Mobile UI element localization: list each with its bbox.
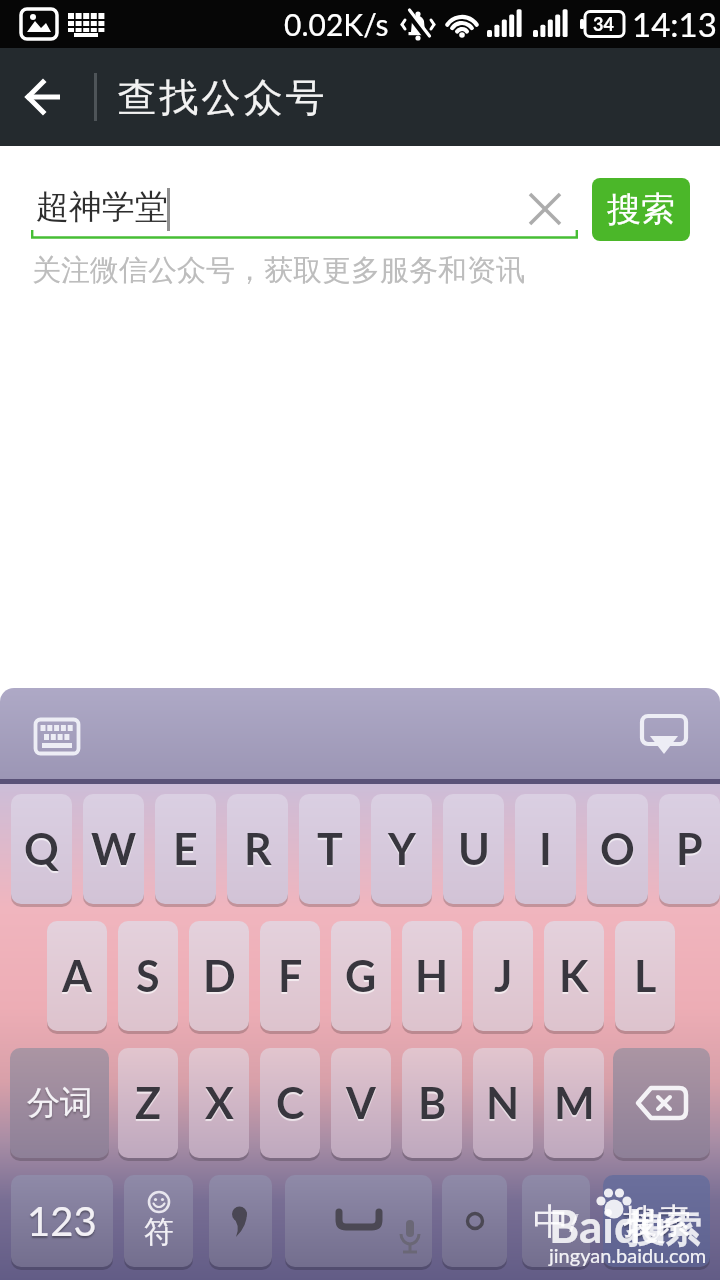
staticText: Z: [135, 1077, 162, 1129]
button[interactable]: [613, 1048, 710, 1158]
staticText: S: [136, 950, 160, 1002]
staticText: H: [415, 950, 449, 1002]
button[interactable]: [285, 1175, 432, 1267]
button[interactable]: F: [260, 921, 320, 1031]
staticText: 超神学堂: [36, 186, 168, 228]
staticText: I: [539, 823, 552, 875]
staticText: O: [600, 823, 635, 875]
button[interactable]: W: [83, 794, 144, 904]
staticText: 123: [27, 1197, 97, 1245]
button[interactable]: I: [515, 794, 576, 904]
button[interactable]: U: [443, 794, 504, 904]
button[interactable]: T: [299, 794, 360, 904]
button[interactable]: L: [615, 921, 675, 1031]
staticText: A: [62, 950, 92, 1002]
staticText: E: [173, 823, 198, 875]
staticText: 14:13: [632, 4, 717, 44]
staticText: J: [494, 950, 513, 1002]
button[interactable]: 中: [522, 1175, 590, 1267]
button[interactable]: [442, 1175, 507, 1267]
staticText: V: [346, 1077, 376, 1129]
button[interactable]: [630, 704, 698, 766]
button[interactable]: P: [659, 794, 720, 904]
button[interactable]: O: [587, 794, 648, 904]
button[interactable]: [209, 1175, 272, 1267]
staticText: 搜索: [607, 188, 675, 231]
button[interactable]: H: [402, 921, 462, 1031]
staticText: N: [486, 1077, 520, 1129]
staticText: L: [634, 950, 657, 1002]
staticText: D: [203, 950, 236, 1002]
staticText: 查找公众号: [116, 73, 326, 122]
staticText: M: [554, 1077, 595, 1129]
staticText: 搜索: [623, 1200, 691, 1243]
button[interactable]: G: [331, 921, 391, 1031]
staticText: 符: [144, 1213, 174, 1251]
button[interactable]: C: [260, 1048, 320, 1158]
button[interactable]: 符: [124, 1175, 193, 1267]
button[interactable]: Y: [371, 794, 432, 904]
staticText: 搜索: [627, 1206, 701, 1253]
staticText: 关注微信公众号，获取更多服务和资讯: [32, 252, 525, 289]
button[interactable]: D: [189, 921, 249, 1031]
staticText: /: [569, 1204, 579, 1239]
staticText: X: [205, 1077, 234, 1129]
staticText: K: [559, 950, 589, 1002]
staticText: Q: [24, 823, 59, 875]
button[interactable]: J: [473, 921, 533, 1031]
button[interactable]: 搜索: [592, 178, 690, 241]
staticText: Y: [388, 823, 416, 875]
staticText: 34: [593, 13, 614, 35]
staticText: U: [458, 823, 490, 875]
button[interactable]: [24, 708, 90, 764]
button[interactable]: M: [544, 1048, 604, 1158]
staticText: P: [676, 823, 703, 875]
staticText: W: [91, 823, 137, 875]
button[interactable]: Z: [118, 1048, 178, 1158]
button[interactable]: 123: [11, 1175, 113, 1267]
staticText: 分词: [27, 1082, 93, 1124]
staticText: T: [317, 823, 343, 875]
staticText: Baidu: [549, 1198, 667, 1253]
staticText: F: [278, 950, 303, 1002]
staticText: C: [276, 1077, 305, 1129]
button[interactable]: A: [47, 921, 107, 1031]
staticText: B: [418, 1077, 447, 1129]
button[interactable]: [519, 183, 571, 235]
button[interactable]: S: [118, 921, 178, 1031]
button[interactable]: N: [473, 1048, 533, 1158]
button[interactable]: R: [227, 794, 288, 904]
staticText: 中: [533, 1199, 569, 1244]
staticText: 0.02K/s: [284, 6, 389, 42]
button[interactable]: B: [402, 1048, 462, 1158]
button[interactable]: E: [155, 794, 216, 904]
staticText: jingyan.baidu.com: [549, 1243, 707, 1267]
button[interactable]: 分词: [10, 1048, 109, 1158]
button[interactable]: Q: [11, 794, 72, 904]
button[interactable]: V: [331, 1048, 391, 1158]
staticText: G: [345, 950, 377, 1002]
button[interactable]: K: [544, 921, 604, 1031]
button[interactable]: [14, 67, 74, 127]
button[interactable]: X: [189, 1048, 249, 1158]
staticText: R: [244, 823, 272, 875]
button[interactable]: 搜索: [603, 1175, 710, 1267]
